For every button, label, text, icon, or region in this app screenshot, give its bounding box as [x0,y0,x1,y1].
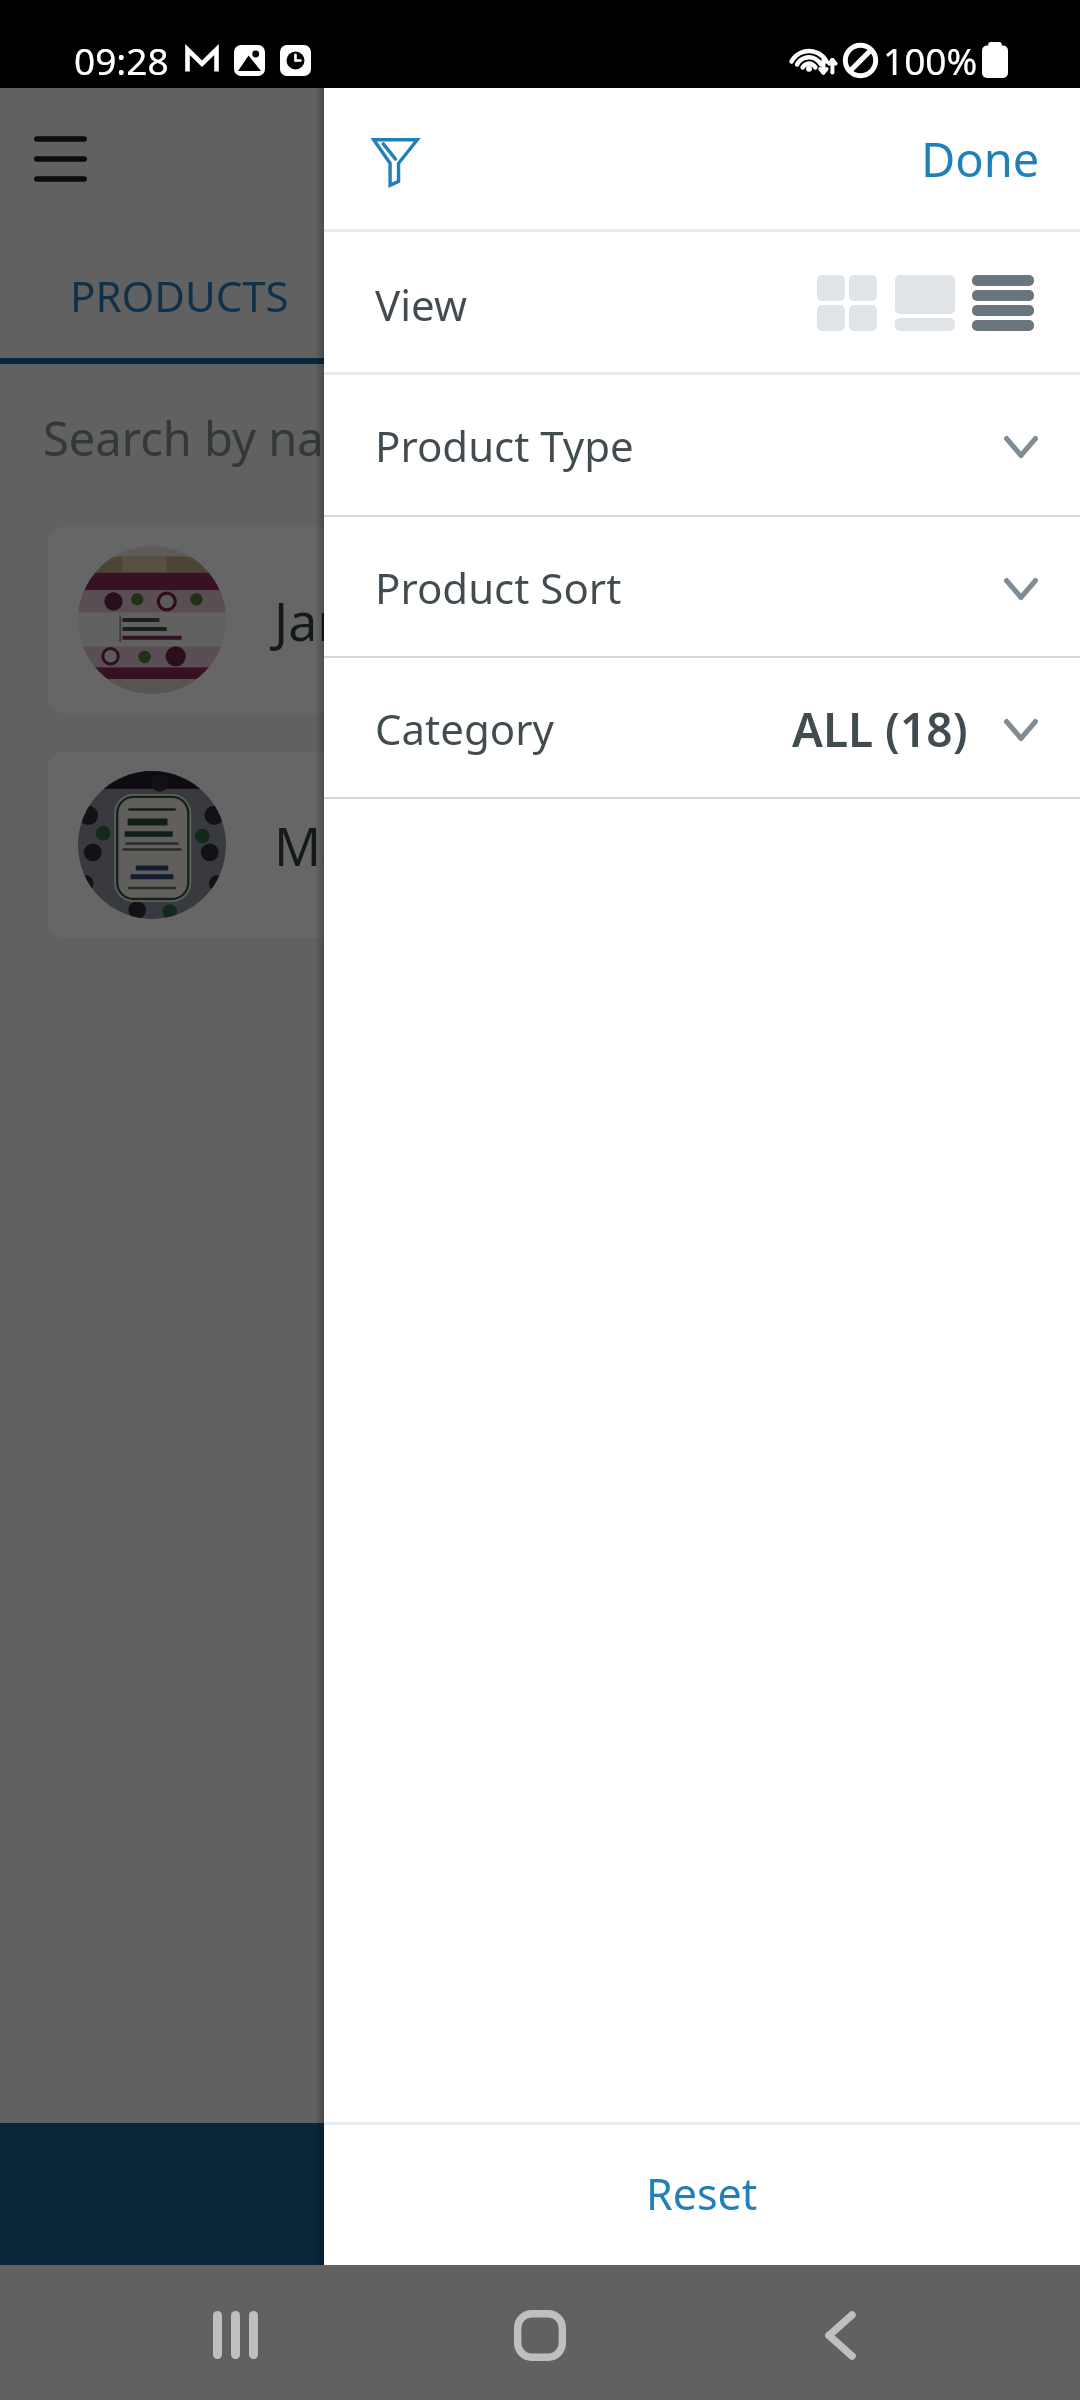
button[interactable]: Filter [341,102,449,222]
button[interactable]: Reset [324,2122,1080,2265]
button[interactable]: Open navigation menu [8,110,113,210]
button[interactable]: List view [964,243,1042,363]
staticText: Category [375,700,554,757]
staticText: ALL (18) [792,698,968,761]
button[interactable]: Grid view [808,243,886,363]
staticText: PRODUCTS [70,267,289,324]
staticText: Marmalade [274,810,554,881]
staticText: Reset [646,2164,758,2223]
staticText: Product Sort [375,559,622,616]
button[interactable]: Home [480,2275,600,2395]
staticText: Jam [274,585,366,656]
staticText: Done [921,127,1040,191]
button[interactable]: Recents [175,2275,295,2395]
staticText: 09:28 [74,35,169,85]
button[interactable]: Jam [48,527,688,713]
staticText: 100% [883,35,978,85]
staticText: Product Type [375,417,634,474]
button[interactable]: Marmalade [48,752,688,938]
button[interactable]: Back [780,2275,900,2395]
button[interactable]: Product Sort [324,515,1080,656]
button[interactable]: Done [881,88,1080,229]
staticText: View [375,276,467,333]
button[interactable]: PRODUCTS [0,244,324,364]
staticText: Search by name [43,406,394,470]
button[interactable]: Category [324,656,1080,797]
button[interactable]: Product Type [324,372,1080,515]
button[interactable]: Card view [886,243,964,363]
